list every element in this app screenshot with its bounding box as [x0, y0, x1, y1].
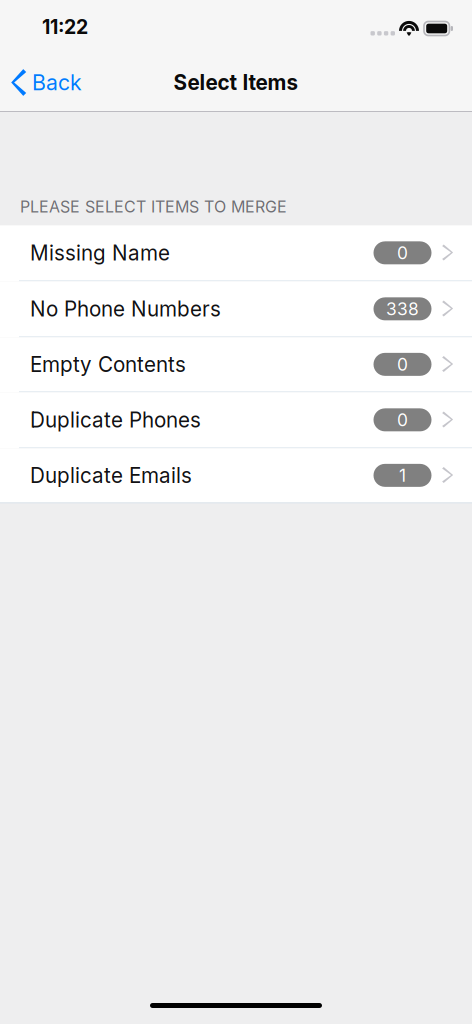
staticText: 338: [386, 298, 419, 319]
button[interactable]: No Phone Numbers: [0, 281, 472, 337]
button[interactable]: Duplicate Phones: [0, 392, 472, 448]
staticText: 0: [397, 409, 408, 430]
button[interactable]: Empty Contents: [0, 337, 472, 392]
button[interactable]: Duplicate Emails: [0, 448, 472, 502]
staticText: 11:22: [42, 15, 88, 39]
staticText: Missing Name: [30, 240, 170, 265]
staticText: Back: [32, 70, 82, 95]
staticText: Select Items: [173, 70, 298, 95]
staticText: Duplicate Emails: [30, 463, 192, 488]
staticText: 0: [397, 354, 408, 375]
staticText: No Phone Numbers: [30, 296, 221, 321]
staticText: Empty Contents: [30, 352, 186, 377]
staticText: 1: [399, 465, 406, 486]
button[interactable]: Back: [0, 58, 94, 106]
staticText: 0: [397, 242, 408, 263]
button[interactable]: Missing Name: [0, 225, 472, 281]
staticText: Duplicate Phones: [30, 407, 201, 432]
staticText: PLEASE SELECT ITEMS TO MERGE: [20, 197, 287, 216]
